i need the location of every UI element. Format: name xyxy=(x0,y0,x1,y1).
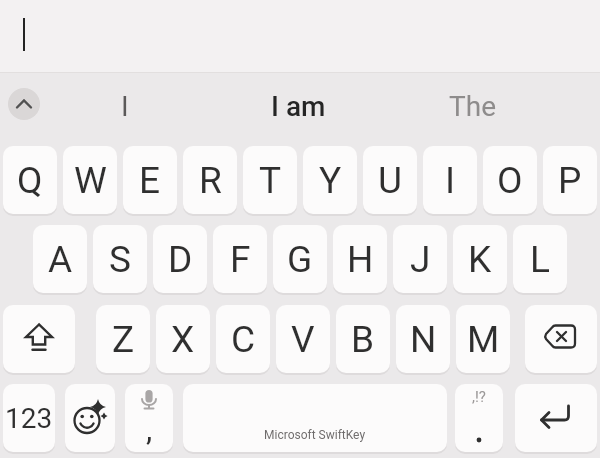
button[interactable]: N xyxy=(396,305,450,373)
button[interactable]: G xyxy=(273,225,327,293)
staticText: I xyxy=(121,90,129,123)
button[interactable] xyxy=(65,384,115,452)
button[interactable]: F xyxy=(213,225,267,293)
button[interactable]: X xyxy=(156,305,210,373)
button[interactable]: Y xyxy=(303,146,357,214)
staticText: V xyxy=(291,318,315,361)
staticText: D xyxy=(168,238,193,281)
button[interactable]: O xyxy=(483,146,537,214)
button[interactable]: C xyxy=(216,305,270,373)
button[interactable]: P xyxy=(543,146,597,214)
staticText: G xyxy=(287,238,313,281)
button[interactable]: U xyxy=(363,146,417,214)
button[interactable]: M xyxy=(456,305,510,373)
staticText: W xyxy=(74,159,107,202)
staticText: A xyxy=(48,238,73,281)
button[interactable]: Z xyxy=(96,305,150,373)
button[interactable] xyxy=(525,305,597,373)
staticText: Microsoft SwiftKey xyxy=(264,428,366,442)
staticText: B xyxy=(351,318,375,361)
button[interactable]: I xyxy=(423,146,477,214)
staticText: Y xyxy=(319,159,342,202)
staticText: C xyxy=(231,318,256,361)
staticText: Z xyxy=(112,318,135,361)
button[interactable]: The xyxy=(422,76,522,136)
button[interactable]: T xyxy=(243,146,297,214)
staticText: ,!? xyxy=(472,388,486,406)
staticText: Q xyxy=(17,159,43,202)
button[interactable]: I xyxy=(75,76,175,136)
staticText: The xyxy=(449,90,496,123)
button[interactable]: V xyxy=(276,305,330,373)
staticText: S xyxy=(109,238,131,281)
button[interactable]: J xyxy=(393,225,447,293)
button[interactable]: A xyxy=(33,225,87,293)
staticText: N xyxy=(410,318,437,361)
button[interactable]: , xyxy=(125,384,173,452)
button[interactable]: S xyxy=(93,225,147,293)
button[interactable]: E xyxy=(123,146,177,214)
button[interactable]: Q xyxy=(3,146,57,214)
staticText: I xyxy=(445,159,456,202)
button[interactable]: B xyxy=(336,305,390,373)
button[interactable]: ,!? xyxy=(455,384,503,452)
button[interactable]: L xyxy=(513,225,567,293)
staticText: L xyxy=(530,238,550,281)
staticText: M xyxy=(467,318,500,361)
button[interactable]: 123 xyxy=(3,384,55,452)
staticText: T xyxy=(259,159,282,202)
staticText: O xyxy=(497,159,523,202)
button[interactable] xyxy=(515,384,597,452)
button[interactable] xyxy=(0,0,600,72)
button[interactable] xyxy=(8,88,40,120)
button[interactable]: R xyxy=(183,146,237,214)
staticText: R xyxy=(199,159,222,202)
staticText: I am xyxy=(271,90,326,123)
button[interactable]: H xyxy=(333,225,387,293)
staticText: U xyxy=(378,159,402,202)
button[interactable]: D xyxy=(153,225,207,293)
button[interactable]: W xyxy=(63,146,117,214)
button[interactable]: Microsoft SwiftKey xyxy=(183,384,447,452)
staticText: P xyxy=(558,159,582,202)
staticText: , xyxy=(146,410,153,448)
staticText: E xyxy=(139,159,161,202)
button[interactable]: I am xyxy=(223,76,373,136)
staticText: F xyxy=(230,238,251,281)
button[interactable]: K xyxy=(453,225,507,293)
staticText: K xyxy=(468,238,492,281)
staticText: 123 xyxy=(5,402,53,435)
staticText: J xyxy=(410,238,431,281)
staticText: H xyxy=(347,238,374,281)
button[interactable] xyxy=(3,305,75,373)
staticText: X xyxy=(171,318,195,361)
